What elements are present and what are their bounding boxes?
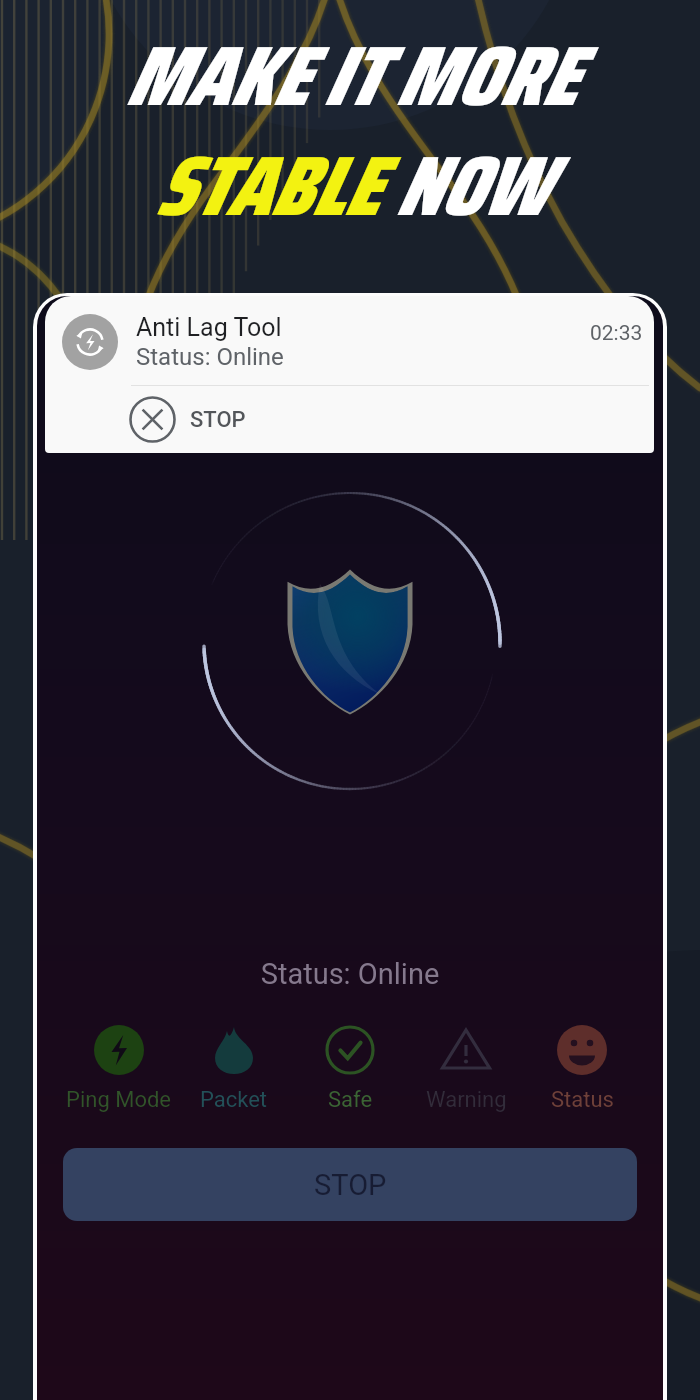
staticText: Warning [426, 1087, 507, 1113]
staticText: Status: Online [37, 957, 663, 991]
staticText: Status [551, 1087, 614, 1113]
other: Status [557, 1025, 607, 1075]
staticText: Safe [328, 1087, 373, 1113]
button[interactable]: Packet [176, 1025, 292, 1113]
staticText: Ping Mode [66, 1087, 172, 1113]
button[interactable]: STOP [63, 1148, 637, 1221]
staticText: Status: Online [136, 343, 284, 371]
staticText: Packet [200, 1087, 268, 1113]
button[interactable]: Ping Mode [61, 1025, 176, 1113]
other: Ping Mode [94, 1025, 144, 1075]
other: Warning [441, 1025, 491, 1075]
other: Packet [209, 1025, 259, 1075]
button[interactable]: Safe [292, 1025, 408, 1113]
staticText: STABLE [154, 120, 379, 252]
button[interactable]: Status [524, 1025, 640, 1113]
staticText: STOP [190, 407, 246, 433]
staticText: NOW [379, 120, 546, 252]
other: Safe [325, 1025, 375, 1075]
button[interactable]: STOP [45, 386, 654, 453]
button[interactable]: Warning [408, 1025, 524, 1113]
staticText: MAKE IT MORE [124, 10, 576, 142]
staticText: STOP [314, 1168, 387, 1202]
staticText: Anti Lag Tool [136, 313, 282, 342]
staticText: 02:33 [590, 321, 643, 346]
